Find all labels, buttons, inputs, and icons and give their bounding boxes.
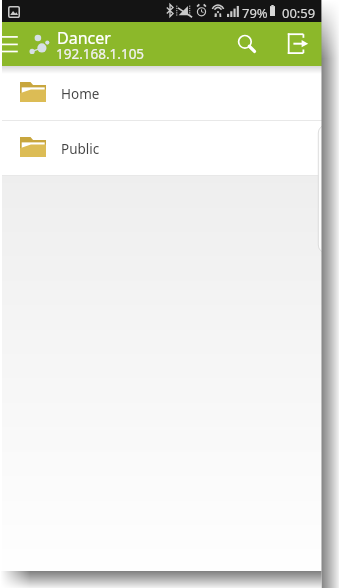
staticText: 00:59: [282, 4, 316, 22]
button[interactable]: Open navigation menu: [2, 22, 24, 66]
staticText: Dancer: [57, 27, 111, 49]
button[interactable]: Public: [2, 121, 322, 175]
staticText: Public: [61, 140, 100, 158]
button[interactable]: Log out: [275, 22, 319, 66]
staticText: 192.168.1.105: [56, 45, 145, 63]
button[interactable]: Search: [223, 22, 267, 66]
button[interactable]: Home: [2, 66, 322, 120]
other: Screenshot captured: [8, 6, 20, 18]
staticText: Home: [61, 85, 100, 103]
staticText: 79%: [242, 4, 268, 22]
